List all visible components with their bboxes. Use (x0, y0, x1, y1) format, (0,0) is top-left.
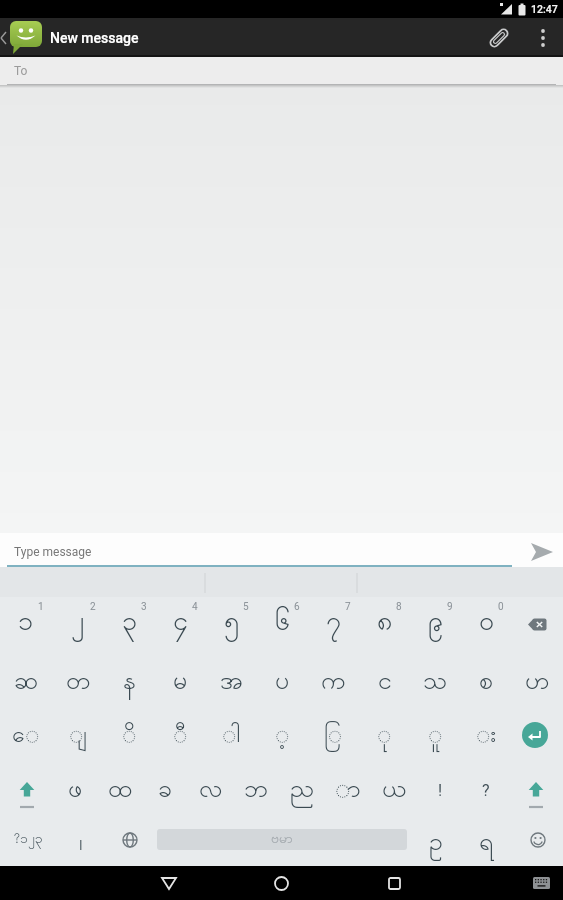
button[interactable]: က (308, 651, 359, 705)
button[interactable] (225, 866, 338, 900)
button[interactable]: ?၁၂၃ (0, 813, 56, 866)
staticText: ၈ (377, 603, 393, 643)
button[interactable]: ယ (371, 759, 417, 813)
staticText: ◌း (476, 719, 497, 753)
staticText: ◌ြ (324, 719, 343, 753)
button[interactable]: အ (206, 651, 257, 705)
button[interactable]: ? (463, 759, 509, 813)
button[interactable]: တ (52, 651, 104, 705)
staticText: 0 (498, 601, 504, 613)
staticText: သ (423, 664, 448, 701)
button[interactable] (0, 30, 8, 46)
staticText: 6 (294, 601, 300, 613)
staticText: ဗမာ (271, 829, 293, 850)
button[interactable]: ၈ (359, 597, 410, 651)
button[interactable]: ◌့ (257, 705, 308, 759)
staticText: ◌ု (377, 719, 392, 753)
button[interactable]: ၉ (410, 597, 461, 651)
staticText: ပ (275, 664, 290, 701)
button[interactable]: ◌ျ (52, 705, 104, 759)
button[interactable] (0, 759, 53, 813)
button[interactable] (10, 20, 42, 55)
button[interactable] (512, 813, 563, 866)
button[interactable]: ၆ (257, 597, 308, 651)
button[interactable] (527, 866, 555, 900)
button[interactable]: ၃ (104, 597, 155, 651)
button[interactable]: ၅ (206, 597, 257, 651)
staticText: ? (482, 781, 490, 800)
staticText: 3 (141, 601, 147, 613)
button[interactable]: ◌ေ (0, 705, 52, 759)
button[interactable]: ◌ု (359, 705, 410, 759)
button[interactable] (530, 542, 554, 562)
button[interactable]: စ (461, 651, 512, 705)
staticText: တ (66, 664, 91, 701)
button[interactable]: သ (410, 651, 461, 705)
button[interactable]: ◌ူ (410, 705, 461, 759)
button[interactable] (105, 813, 154, 866)
button[interactable]: ၊ (56, 813, 105, 866)
staticText: ၊ (79, 827, 83, 861)
button[interactable]: Type message (14, 545, 92, 559)
button[interactable]: ၂ (52, 597, 104, 651)
button[interactable]: မ (155, 651, 206, 705)
staticText: ၂ (71, 603, 85, 643)
button[interactable]: To (0, 57, 563, 85)
button[interactable]: ခ (143, 759, 188, 813)
button[interactable]: ဆ (0, 651, 52, 705)
staticText: အ (220, 664, 243, 701)
staticText: ဆ (14, 664, 39, 701)
staticText: လ (199, 772, 223, 809)
staticText: ဟ (525, 664, 550, 701)
button[interactable] (512, 597, 563, 651)
button[interactable]: ဥ (410, 813, 461, 866)
button[interactable]: န (104, 651, 155, 705)
button[interactable] (512, 705, 563, 759)
button[interactable]: ! (417, 759, 463, 813)
button[interactable]: ၀ (461, 597, 512, 651)
button[interactable] (112, 866, 225, 900)
button[interactable]: ◌ာ (325, 759, 371, 813)
button[interactable]: င (359, 651, 410, 705)
staticText: ၁ (18, 603, 34, 643)
staticText: New message (50, 30, 139, 46)
staticText: ◌ူ (428, 719, 443, 753)
button[interactable]: ဖ (53, 759, 98, 813)
staticText: ဖ (68, 772, 83, 809)
button[interactable]: ◌ြ (308, 705, 359, 759)
button[interactable]: ၄ (155, 597, 206, 651)
staticText: ၃ (122, 603, 138, 643)
button[interactable]: ◌ိ (104, 705, 155, 759)
staticText: 5 (243, 601, 249, 613)
staticText: န (123, 664, 136, 701)
staticText: 4 (192, 601, 198, 613)
button[interactable]: ဗမာ (154, 813, 410, 866)
button[interactable] (338, 866, 451, 900)
button[interactable]: ◌ီ (155, 705, 206, 759)
button[interactable]: ည (279, 759, 325, 813)
button[interactable]: ၇ (308, 597, 359, 651)
button[interactable]: ဟ (512, 651, 563, 705)
button[interactable] (509, 759, 563, 813)
staticText: က (321, 664, 346, 701)
staticText: 1 (38, 601, 44, 613)
button[interactable]: ရ (461, 813, 512, 866)
button[interactable]: ဘ (233, 759, 279, 813)
staticText: ?၁၂၃ (14, 829, 43, 850)
button[interactable] (523, 18, 563, 57)
button[interactable]: ပ (257, 651, 308, 705)
staticText: ! (438, 781, 443, 800)
button[interactable]: ◌ါ (206, 705, 257, 759)
button[interactable] (482, 21, 516, 55)
staticText: ◌ျ (69, 719, 87, 753)
staticText: ခ (158, 772, 173, 809)
button[interactable]: ၁ (0, 597, 52, 651)
staticText: To (14, 64, 28, 78)
staticText: ၅ (224, 603, 240, 643)
button[interactable]: ထ (98, 759, 143, 813)
staticText: ◌ီ (173, 719, 188, 753)
button[interactable]: ◌း (461, 705, 512, 759)
staticText: ◌ိ (122, 719, 137, 753)
button[interactable]: လ (188, 759, 233, 813)
staticText: မ (173, 664, 188, 701)
